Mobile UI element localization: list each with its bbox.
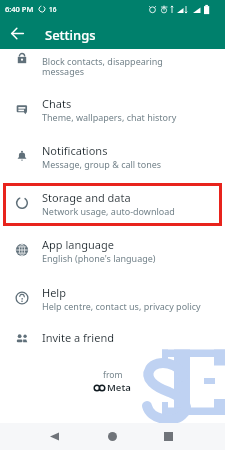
button[interactable] [0,276,225,320]
staticText: Message, group & call tones [42,158,162,170]
staticText: Invite a friend [42,330,114,345]
staticText: Help centre, contact us, privacy policy [42,300,201,312]
button[interactable]: Recent apps [155,423,182,450]
staticText: App language [42,237,114,252]
button[interactable] [0,87,225,131]
staticText: from [103,369,123,381]
button[interactable]: Back [41,423,68,450]
button[interactable] [0,317,225,361]
staticText: Theme, wallpapers, chat history [42,111,177,123]
staticText: Notifications [42,143,108,158]
staticText: Storage and data [42,190,131,205]
staticText: Meta [107,381,131,394]
staticText: Settings [45,26,96,44]
staticText: Block contacts, disappearing messages [42,55,163,78]
button[interactable] [0,228,225,272]
staticText: Chats [42,96,72,111]
staticText: English (phone's language) [42,252,156,264]
button[interactable]: Home [99,423,126,450]
button[interactable]: Back [2,18,33,49]
staticText: Help [42,285,66,300]
button[interactable] [0,134,225,178]
staticText: Network usage, auto-download [42,205,175,217]
button[interactable] [0,36,225,80]
staticText: 6:40 PM [5,4,34,14]
staticText: 16 [49,5,57,14]
button[interactable] [0,181,225,225]
